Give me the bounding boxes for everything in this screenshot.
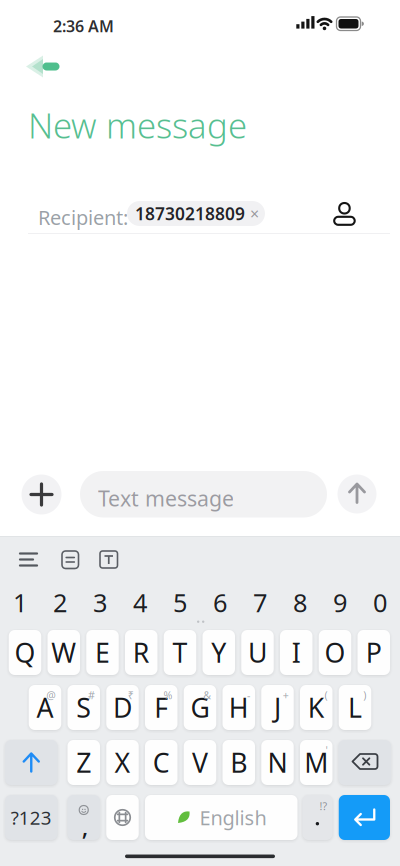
button[interactable]: 18730218809 — [127, 201, 265, 226]
button[interactable] — [5, 740, 57, 785]
staticText: & — [203, 688, 211, 702]
button[interactable]: , — [67, 795, 100, 840]
staticText: Recipient: — [38, 204, 128, 231]
button[interactable]: E — [86, 630, 119, 675]
button[interactable] — [337, 474, 376, 513]
staticText: Text message — [98, 484, 234, 512]
staticText: 0 — [373, 586, 387, 619]
staticText: - — [247, 688, 250, 702]
button[interactable] — [106, 795, 139, 840]
button[interactable]: O — [319, 630, 351, 675]
staticText: B — [230, 745, 247, 780]
button[interactable]: K — [300, 685, 332, 730]
button[interactable]: 9 — [320, 580, 360, 625]
button[interactable]: 6 — [200, 580, 240, 625]
staticText: W — [51, 635, 76, 670]
staticText: ?123 — [11, 805, 52, 830]
staticText: ' — [325, 743, 327, 757]
button[interactable]: W — [47, 630, 80, 675]
button[interactable] — [100, 551, 117, 568]
staticText: 4 — [133, 586, 147, 619]
button[interactable]: G — [184, 685, 216, 730]
button[interactable] — [21, 474, 61, 514]
staticText: Q — [14, 635, 35, 670]
button[interactable]: S — [67, 685, 100, 730]
button[interactable]: 4 — [120, 580, 160, 625]
button[interactable]: English — [145, 795, 297, 840]
staticText: ) — [363, 688, 366, 702]
button[interactable]: 7 — [240, 580, 280, 625]
button[interactable]: Q — [9, 630, 41, 675]
button[interactable]: R — [125, 630, 157, 675]
staticText: × — [250, 203, 259, 224]
staticText: 2 — [53, 586, 67, 619]
staticText: ₹ — [128, 688, 134, 702]
staticText: 8 — [293, 586, 307, 619]
staticText: T — [172, 635, 187, 670]
button[interactable]: J — [261, 685, 294, 730]
button[interactable]: Text message — [80, 471, 327, 517]
button[interactable]: P — [357, 630, 390, 675]
staticText: 18730218809 — [135, 202, 245, 225]
button[interactable]: 2 — [40, 580, 80, 625]
button[interactable]: N — [261, 740, 294, 785]
button[interactable]: 5 — [160, 580, 200, 625]
staticText: 3 — [93, 586, 107, 619]
button[interactable]: C — [145, 740, 177, 785]
staticText: English — [199, 804, 266, 831]
staticText: H — [229, 690, 249, 725]
button[interactable]: 0 — [360, 580, 400, 625]
staticText: @ — [46, 688, 56, 702]
staticText: D — [113, 690, 132, 725]
button[interactable] — [62, 551, 78, 568]
button[interactable]: B — [222, 740, 255, 785]
staticText: X — [114, 745, 130, 780]
button[interactable]: Z — [67, 740, 100, 785]
staticText: 7 — [253, 586, 267, 619]
staticText: I — [292, 635, 301, 670]
button[interactable]: 1 — [0, 580, 40, 625]
button[interactable]: 8 — [280, 580, 320, 625]
button[interactable]: 3 — [80, 580, 120, 625]
button[interactable] — [338, 740, 391, 785]
staticText: 1 — [13, 586, 27, 619]
staticText: + — [283, 688, 289, 702]
button[interactable]: ?123 — [5, 795, 57, 840]
button[interactable]: V — [184, 740, 216, 785]
button[interactable]: A — [29, 685, 61, 730]
button[interactable]: T — [164, 630, 196, 675]
button[interactable] — [339, 795, 390, 840]
button[interactable]: H — [222, 685, 255, 730]
staticText: 2:36 AM — [53, 15, 114, 37]
staticText: K — [308, 690, 325, 725]
staticText: Y — [211, 635, 226, 670]
staticText: U — [248, 635, 267, 670]
staticText: E — [95, 635, 110, 670]
staticText: A — [36, 690, 53, 725]
staticText: J — [274, 690, 281, 725]
button[interactable]: L — [339, 685, 371, 730]
button[interactable]: U — [241, 630, 274, 675]
button[interactable]: F — [145, 685, 177, 730]
staticText: 9 — [333, 586, 347, 619]
staticText: O — [324, 635, 345, 670]
button[interactable]: D — [106, 685, 139, 730]
button[interactable]: X — [106, 740, 139, 785]
button[interactable] — [330, 203, 359, 225]
staticText: M — [304, 745, 328, 780]
staticText: V — [192, 745, 208, 780]
button[interactable] — [17, 52, 61, 81]
staticText: C — [153, 745, 170, 780]
button[interactable]: !? — [302, 795, 332, 840]
staticText: # — [88, 688, 95, 702]
button[interactable]: Y — [202, 630, 235, 675]
staticText: L — [348, 690, 362, 725]
staticText: 6 — [213, 586, 227, 619]
staticText: N — [267, 745, 287, 780]
button[interactable]: M — [300, 740, 332, 785]
staticText: Z — [76, 745, 91, 780]
button[interactable] — [19, 552, 38, 567]
button[interactable]: I — [280, 630, 312, 675]
staticText: , — [82, 810, 89, 842]
staticText: 5 — [173, 586, 187, 619]
